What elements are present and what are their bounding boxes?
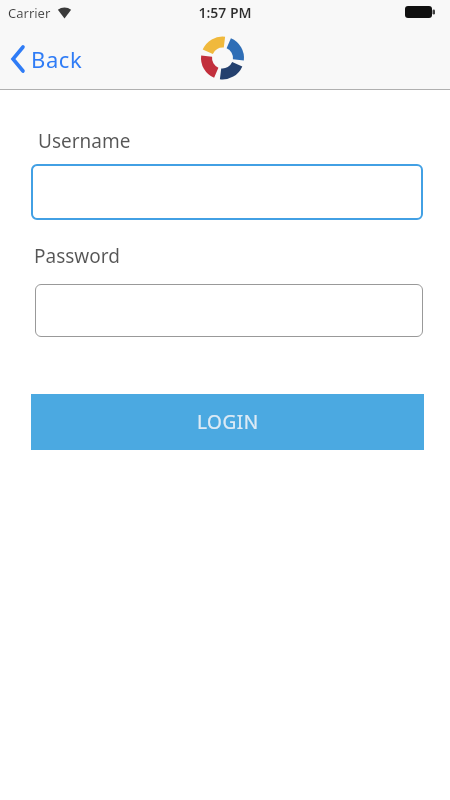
staticText: 1:57 PM xyxy=(0,3,450,22)
button[interactable] xyxy=(35,284,423,337)
button[interactable] xyxy=(31,164,423,220)
staticText: Back xyxy=(31,44,83,74)
staticText: Password xyxy=(34,243,120,269)
staticText: LOGIN xyxy=(197,409,259,435)
button[interactable]: LOGIN xyxy=(31,394,424,450)
button[interactable]: Back xyxy=(8,42,85,76)
staticText: Carrier xyxy=(8,4,51,22)
staticText: Username xyxy=(38,128,131,154)
